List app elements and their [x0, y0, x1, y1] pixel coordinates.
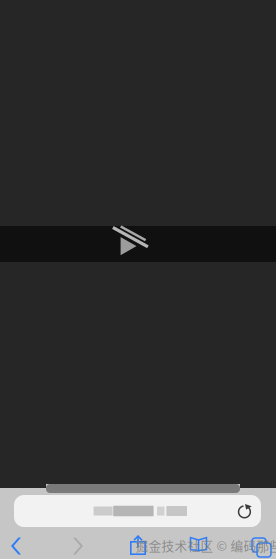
- button[interactable]: Back: [4, 537, 28, 555]
- button[interactable]: Reload: [232, 496, 258, 526]
- staticText: 掘金技术社区 © 编码那些事: [135, 536, 276, 554]
- button[interactable]: Tabs: [247, 536, 271, 554]
- button[interactable]: Forward: [66, 537, 90, 555]
- button[interactable]: Share: [126, 535, 150, 555]
- button[interactable]: Address: [14, 495, 261, 527]
- button[interactable]: Bookmarks: [186, 537, 211, 552]
